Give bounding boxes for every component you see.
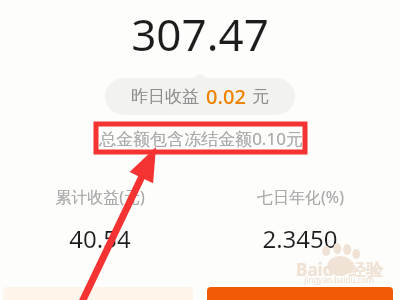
staticText: 累计收益(元) [55,186,145,208]
button[interactable]: 累计收益(元) [0,186,200,255]
staticText: 0.02 [206,83,246,110]
staticText: jingyan.baidu.com [304,274,374,285]
staticText: 昨日收益 [131,86,199,107]
button[interactable]: 昨日收益 [105,78,295,115]
staticText: 2.3450 [262,222,338,255]
staticText: 307.47 [131,4,269,64]
button[interactable]: 转出 [3,287,193,300]
staticText: 40.54 [69,222,131,255]
button[interactable]: 转入 [207,287,393,300]
staticText: Baidu 经验 [296,258,383,281]
button[interactable]: 七日年化(%) [200,186,400,255]
button[interactable]: 总金额包含冻结金额0.10元 [96,124,305,152]
staticText: 七日年化(%) [257,186,344,208]
staticText: 总金额包含冻结金额0.10元 [99,127,303,150]
staticText: 元 [252,86,269,107]
